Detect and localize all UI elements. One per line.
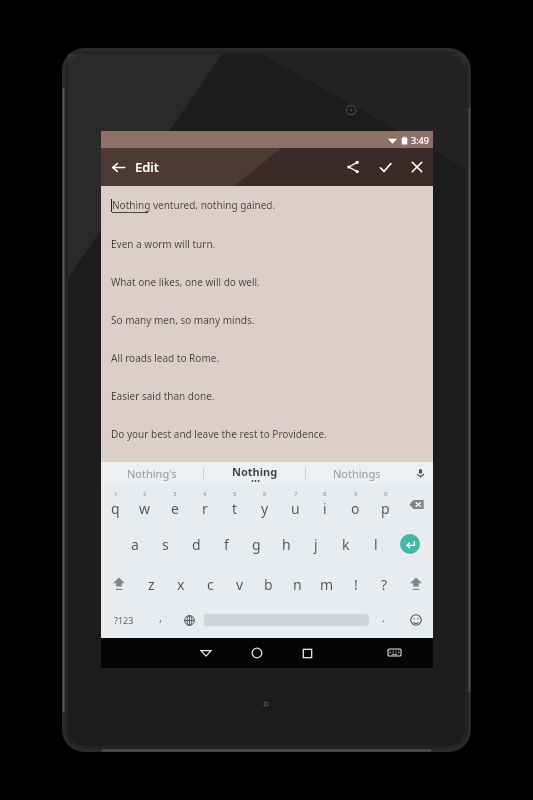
button[interactable]: Recent apps <box>282 638 333 668</box>
staticText: w <box>139 499 151 518</box>
button[interactable]: ! <box>341 564 370 604</box>
button[interactable]: Shift <box>399 564 433 604</box>
staticText: 8 <box>323 490 327 498</box>
button[interactable]: Back <box>101 148 135 186</box>
staticText: f <box>224 535 229 554</box>
button[interactable]: a <box>119 524 150 564</box>
staticText: Easier said than done. <box>111 389 215 403</box>
staticText: y <box>261 499 269 518</box>
button[interactable]: n <box>283 564 312 604</box>
staticText: 1 <box>114 490 118 498</box>
button[interactable]: 8 <box>310 484 340 524</box>
button[interactable]: k <box>331 524 361 564</box>
button[interactable]: Enter <box>391 524 428 564</box>
button[interactable]: Home <box>231 638 282 668</box>
button[interactable]: Emoji <box>398 604 433 636</box>
button[interactable]: b <box>254 564 283 604</box>
button[interactable]: Nothing <box>204 462 305 484</box>
button[interactable]: Backspace <box>400 484 433 524</box>
staticText: a <box>131 535 139 554</box>
button[interactable]: j <box>301 524 331 564</box>
staticText: h <box>282 535 291 554</box>
staticText: n <box>293 575 302 594</box>
staticText: . <box>382 610 385 625</box>
staticText: What one likes, one will do well. <box>111 275 260 289</box>
button[interactable]: s <box>150 524 181 564</box>
button[interactable]: ? <box>370 564 399 604</box>
button[interactable]: Nothing's <box>101 462 203 484</box>
button[interactable]: Back <box>180 638 231 668</box>
staticText: i <box>323 499 327 518</box>
staticText: u <box>291 499 300 518</box>
button[interactable]: Change language <box>175 604 204 636</box>
staticText: Edit <box>135 158 159 176</box>
staticText: q <box>111 499 120 518</box>
staticText: Nothing's <box>127 466 177 481</box>
staticText: o <box>351 499 360 518</box>
button[interactable]: Hide keyboard <box>369 638 420 668</box>
button[interactable]: Nothing ventured, nothing gained. <box>101 186 433 462</box>
button[interactable]: l <box>361 524 391 564</box>
staticText: Even a worm will turn. <box>111 237 216 251</box>
staticText: r <box>202 499 208 518</box>
staticText: Do your best and leave the rest to Provi… <box>111 427 327 441</box>
staticText: j <box>314 535 318 554</box>
button[interactable]: Shift <box>101 564 136 604</box>
button[interactable]: 0 <box>370 484 400 524</box>
staticText: z <box>148 575 155 594</box>
staticText: p <box>381 499 390 518</box>
button[interactable]: d <box>181 524 211 564</box>
button[interactable]: 5 <box>220 484 250 524</box>
button[interactable]: m <box>312 564 341 604</box>
button[interactable]: 2 <box>130 484 160 524</box>
button[interactable]: g <box>241 524 271 564</box>
staticText: All roads lead to Rome. <box>111 351 220 365</box>
staticText: 6 <box>263 490 267 498</box>
staticText: Nothing ventured, nothing gained. <box>112 198 276 212</box>
button[interactable]: 7 <box>280 484 310 524</box>
staticText: b <box>264 575 273 594</box>
button[interactable]: , <box>146 604 175 636</box>
staticText: So many men, so many minds. <box>111 313 255 327</box>
staticText: ! <box>354 575 358 594</box>
button[interactable]: Nothings <box>306 462 407 484</box>
staticText: 2 <box>143 490 147 498</box>
staticText: l <box>374 535 378 554</box>
button[interactable]: c <box>196 564 225 604</box>
button[interactable]: Close <box>401 148 433 186</box>
staticText: c <box>207 575 214 594</box>
staticText: e <box>171 499 179 518</box>
staticText: m <box>320 575 334 594</box>
button[interactable]: . <box>369 604 398 636</box>
button[interactable]: h <box>271 524 301 564</box>
button[interactable]: v <box>225 564 254 604</box>
button[interactable]: f <box>211 524 241 564</box>
button[interactable]: 4 <box>190 484 220 524</box>
button[interactable]: ?123 <box>101 604 146 636</box>
button[interactable]: 9 <box>340 484 370 524</box>
button[interactable]: z <box>136 564 166 604</box>
staticText: 4 <box>203 490 207 498</box>
staticText: x <box>177 575 185 594</box>
staticText: 3:49 <box>411 134 429 146</box>
button[interactable]: Share <box>337 148 369 186</box>
button[interactable]: Save <box>369 148 401 186</box>
staticText: 7 <box>294 490 298 498</box>
staticText: 3 <box>173 490 177 498</box>
button[interactable]: 6 <box>250 484 280 524</box>
staticText: 9 <box>354 490 358 498</box>
button[interactable]: x <box>166 564 196 604</box>
staticText: t <box>232 499 238 518</box>
staticText: 5 <box>233 490 237 498</box>
staticText: Nothing <box>232 464 278 479</box>
staticText: , <box>159 610 162 625</box>
button[interactable]: Voice input <box>407 462 433 484</box>
button[interactable]: 1 <box>101 484 130 524</box>
staticText: ?123 <box>114 614 134 626</box>
staticText: v <box>236 575 244 594</box>
staticText: g <box>252 535 261 554</box>
staticText: k <box>342 535 350 554</box>
staticText: d <box>192 535 201 554</box>
button[interactable]: 3 <box>160 484 190 524</box>
